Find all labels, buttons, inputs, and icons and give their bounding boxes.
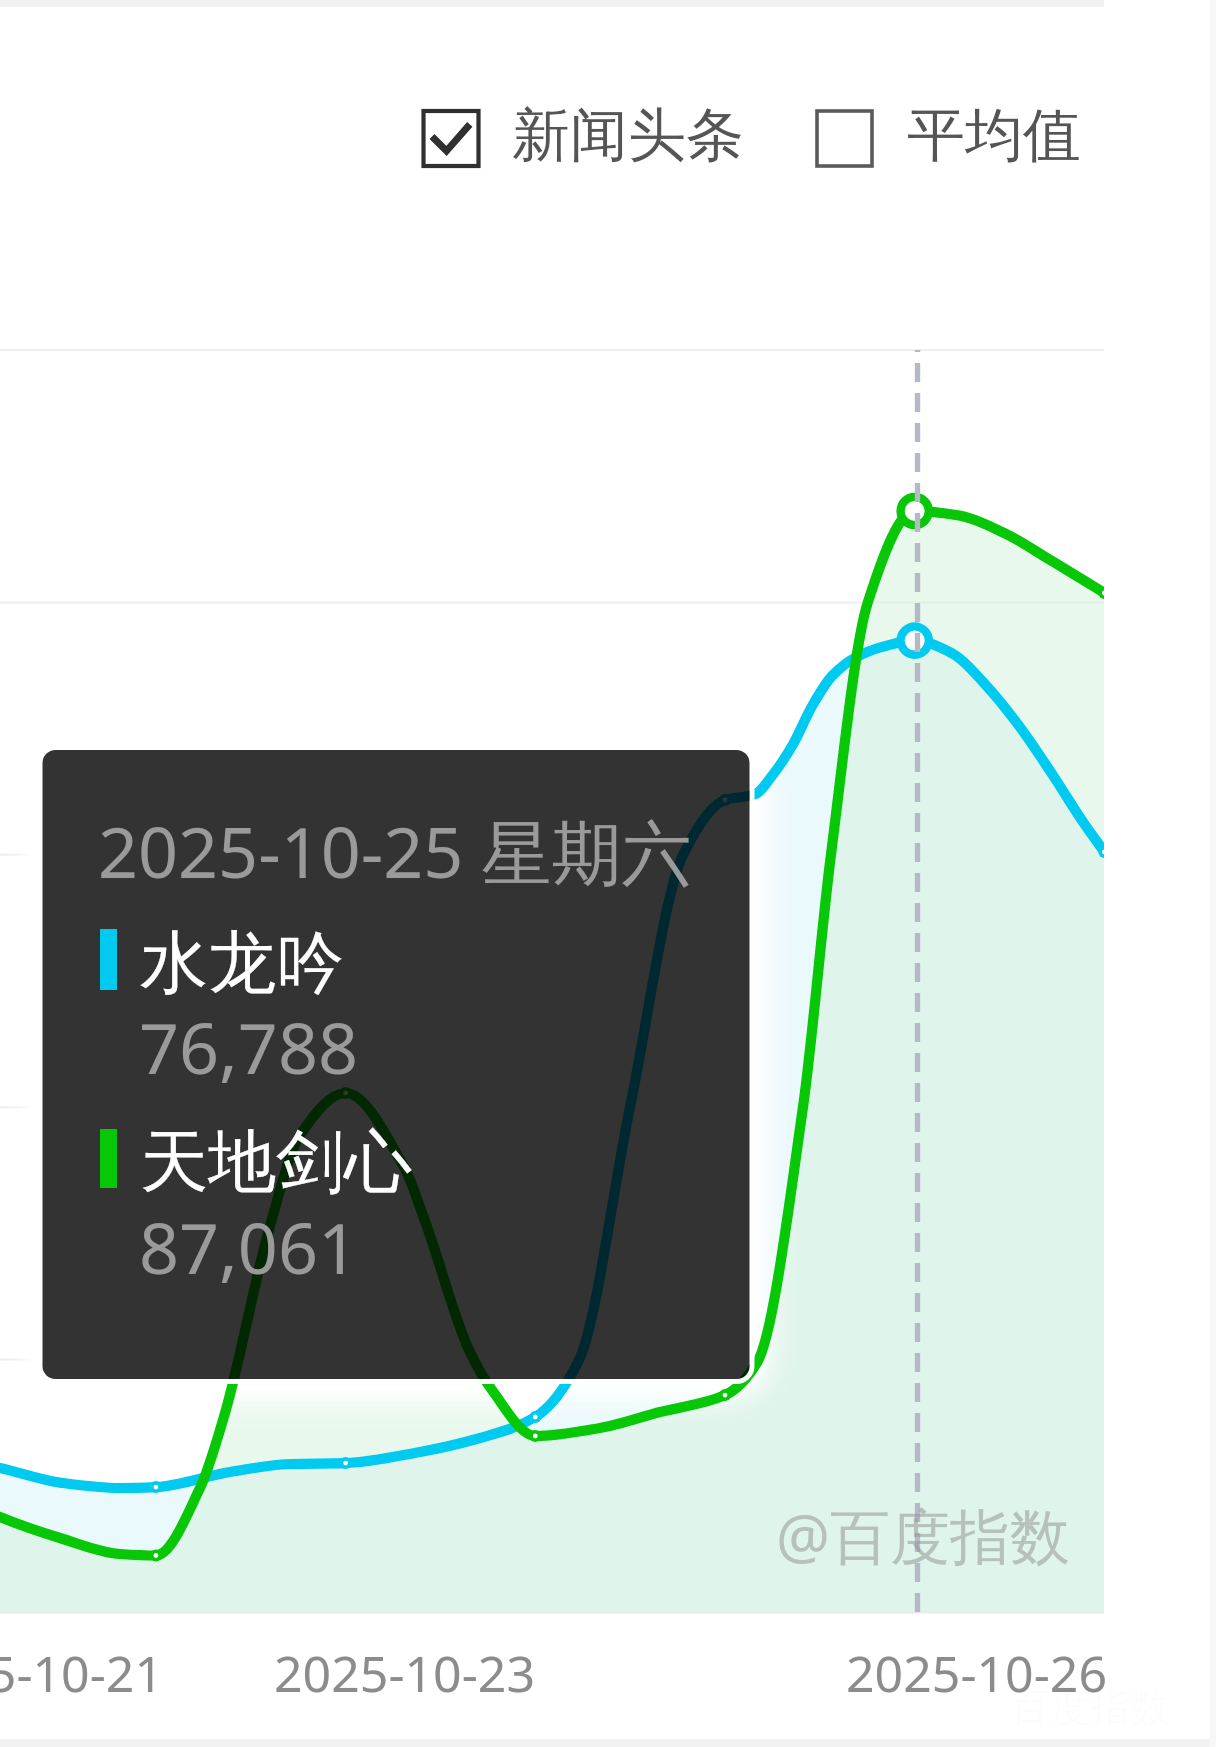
staticText: 76,788 [139, 999, 358, 1094]
staticText: 水龙吟 [140, 921, 344, 1007]
staticText: 天地剑心 [140, 1120, 412, 1206]
staticText: 新闻头条 [512, 99, 744, 172]
staticText: 2025-10-23 [274, 1639, 535, 1707]
staticText: 2025-10-25 星期六 [98, 803, 692, 899]
button[interactable]: 2025-10-25 星期六 data tooltip [42, 750, 750, 1379]
button[interactable]: 平均值 legend toggle, unchecked [807, 96, 1085, 184]
staticText: 2025-10-26 [846, 1639, 1107, 1707]
staticText: 2025-10-21 [0, 1639, 163, 1707]
button[interactable]: 新闻头条 legend toggle, checked [412, 96, 748, 184]
staticText: 平均值 [907, 99, 1081, 172]
staticText: @百度指数 [776, 1494, 1070, 1576]
staticText: 百度指数 [1010, 1682, 1170, 1732]
staticText: 87,061 [139, 1199, 358, 1294]
